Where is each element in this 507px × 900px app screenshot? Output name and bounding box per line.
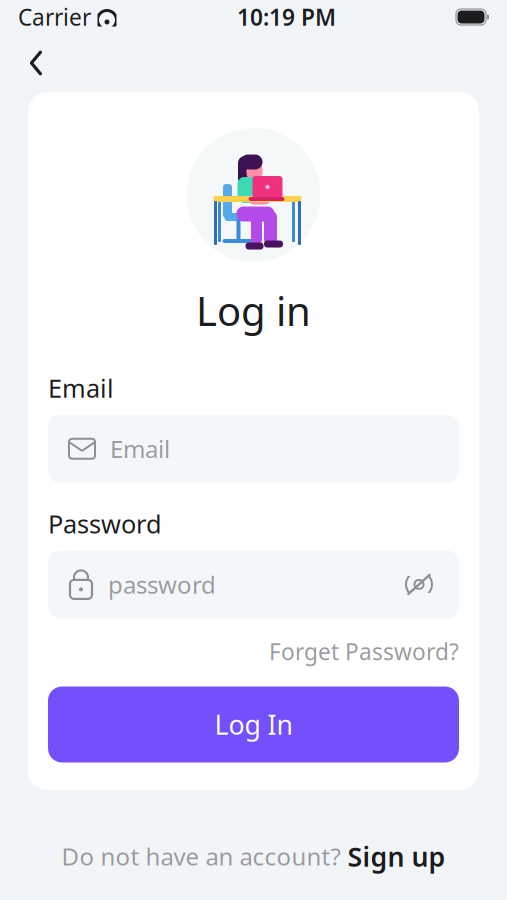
staticText: Password xyxy=(48,507,162,540)
staticText: Sign up xyxy=(347,839,445,874)
button[interactable]: Forget Password? xyxy=(269,630,459,672)
staticText: Email xyxy=(48,371,114,405)
staticText: password xyxy=(108,568,216,600)
button[interactable]: Show password xyxy=(399,564,439,604)
button[interactable]: Back xyxy=(14,41,58,85)
staticText: Do not have an account? xyxy=(61,840,340,872)
staticText: Email xyxy=(110,433,170,465)
staticText: Log in xyxy=(196,284,311,337)
button[interactable]: Log In xyxy=(48,686,459,762)
staticText: Log In xyxy=(214,707,292,742)
staticText: Forget Password? xyxy=(269,636,459,666)
button[interactable]: Do not have an account? xyxy=(0,831,507,882)
staticText: 10:19 PM xyxy=(237,2,336,32)
staticText: Carrier xyxy=(18,2,91,32)
